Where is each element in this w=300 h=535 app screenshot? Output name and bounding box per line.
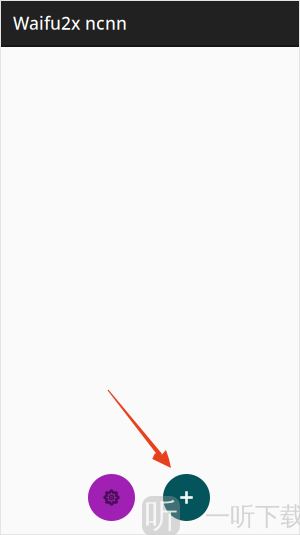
staticText: 一听下载 (205, 501, 300, 532)
button[interactable]: Add image (163, 474, 210, 521)
button[interactable]: Settings (88, 474, 135, 521)
staticText: Waifu2x ncnn (13, 11, 127, 34)
staticText: 听 (144, 495, 177, 535)
